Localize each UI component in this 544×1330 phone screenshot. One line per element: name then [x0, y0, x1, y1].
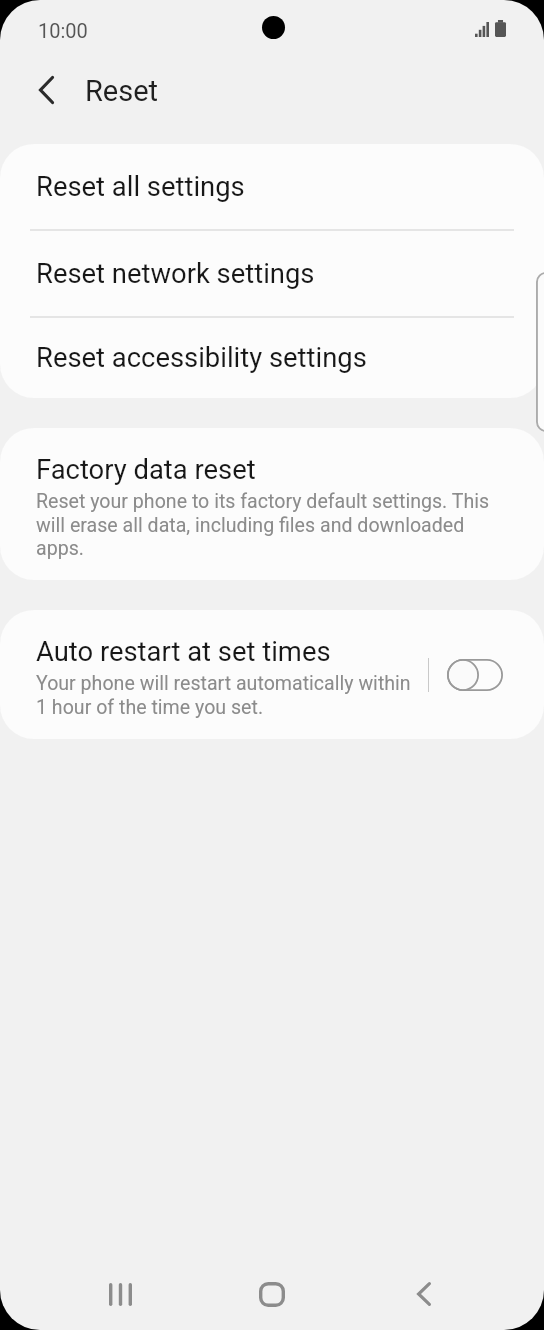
staticText: Your phone will restart automatically wi…: [36, 672, 412, 718]
staticText: Reset your phone to its factory default …: [36, 490, 500, 559]
button[interactable]: Navigate up: [23, 67, 69, 113]
staticText: Auto restart at set times: [36, 636, 331, 668]
staticText: Factory data reset: [36, 454, 256, 486]
staticText: 10:00: [38, 19, 88, 42]
staticText: Reset: [85, 74, 159, 108]
button[interactable]: Reset all settings: [0, 144, 544, 229]
button[interactable]: Home: [228, 1260, 316, 1328]
button[interactable]: Factory data reset: [0, 428, 544, 580]
button[interactable]: Auto restart at set times toggle: [437, 610, 513, 739]
button[interactable]: Back: [380, 1260, 468, 1328]
button[interactable]: Reset network settings: [0, 231, 544, 316]
button[interactable]: Recent apps: [76, 1260, 164, 1328]
button[interactable]: Auto restart at set times: [0, 610, 420, 739]
staticText: Reset accessibility settings: [36, 342, 367, 374]
staticText: Reset all settings: [36, 171, 245, 203]
staticText: Reset network settings: [36, 258, 315, 290]
button[interactable]: Reset accessibility settings: [0, 318, 544, 398]
